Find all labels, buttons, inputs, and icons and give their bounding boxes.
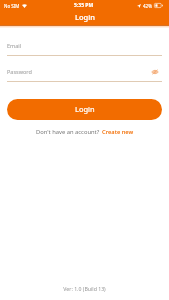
staticText: 42% (143, 3, 152, 9)
staticText: Ver: 1.0 (Build 13) (0, 285, 169, 292)
staticText: Create new (102, 128, 134, 136)
button[interactable]: Create new (102, 128, 134, 136)
staticText: Don't have an account? (36, 128, 100, 136)
staticText: 5:35 PM (74, 2, 94, 9)
button[interactable]: Password (7, 67, 162, 76)
button[interactable]: Login (7, 99, 162, 120)
staticText: Password (7, 68, 32, 75)
staticText: Login (75, 104, 95, 114)
staticText: Login (75, 12, 95, 22)
button[interactable]: Toggle password visibility (150, 67, 159, 76)
staticText: No SIM (4, 3, 20, 9)
button[interactable]: Email (7, 41, 162, 50)
staticText: Email (7, 42, 22, 49)
